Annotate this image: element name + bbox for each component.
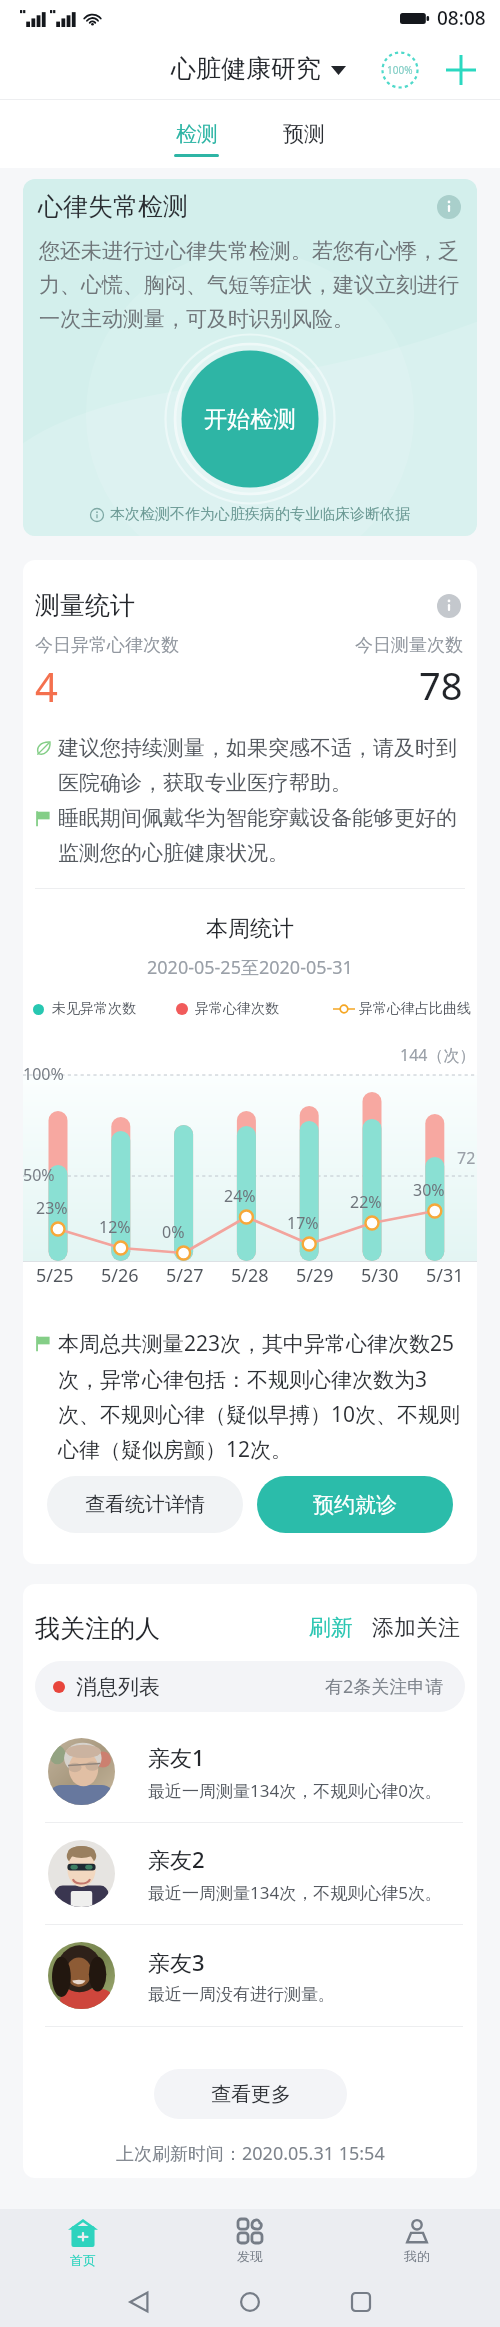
button[interactable]: Recents [339, 2280, 383, 2324]
staticText: 我关注的人 [35, 1613, 160, 1644]
staticText: 消息列表 [76, 1674, 160, 1700]
staticText: 5/27 [166, 1263, 204, 1288]
staticText: 本次检测不作为心脏疾病的专业临床诊断依据 [110, 505, 410, 524]
button[interactable]: 添加关注 [367, 1609, 465, 1647]
staticText: 未见异常次数 [52, 1000, 136, 1018]
staticText: 今日异常心律次数 [35, 634, 179, 657]
staticText: 2020-05-25至2020-05-31 [147, 955, 353, 980]
staticText: 最近一周测量134次，不规则心律5次。 [148, 1881, 442, 1904]
staticText: 异常心律次数 [195, 1000, 279, 1018]
staticText: 144（次） [400, 1044, 476, 1066]
staticText: 查看更多 [211, 2082, 291, 2107]
button[interactable]: 亲友3 [23, 1925, 477, 2026]
staticText: 发现 [237, 2248, 263, 2264]
button[interactable]: 我的 [333, 2209, 500, 2268]
staticText: 刷新 [309, 1614, 353, 1642]
button[interactable]: 心脏健康研究 [171, 53, 346, 84]
staticText: 5/26 [101, 1263, 139, 1288]
staticText: 5/25 [36, 1263, 74, 1288]
staticText: 有2条关注申请 [325, 1674, 444, 1699]
staticText: 检测 [176, 121, 218, 147]
button[interactable]: Home [228, 2280, 272, 2324]
staticText: 心脏健康研究 [171, 53, 321, 84]
button[interactable]: 检测 [174, 121, 219, 157]
staticText: 50% [23, 1164, 55, 1186]
staticText: 5/31 [426, 1263, 464, 1288]
staticText: 亲友3 [148, 1947, 205, 1977]
button[interactable]: 预测 [281, 121, 326, 157]
staticText: 72 [457, 1147, 476, 1169]
button[interactable]: 亲友2 [23, 1823, 477, 1924]
staticText: 预测 [283, 121, 325, 147]
staticText: 异常心律占比曲线 [359, 1000, 471, 1018]
staticText: 建议您持续测量，如果突感不适，请及时到医院确诊，获取专业医疗帮助。 [58, 735, 463, 796]
staticText: 100% [23, 1063, 64, 1085]
button[interactable]: 刷新 [304, 1609, 358, 1647]
staticText: 本周统计 [206, 915, 294, 943]
staticText: 上次刷新时间：2020.05.31 15:54 [116, 2141, 385, 2166]
staticText: 4 [35, 659, 58, 713]
staticText: 心律失常检测 [38, 191, 188, 222]
staticText: 亲友1 [148, 1742, 205, 1772]
staticText: 5/30 [361, 1263, 399, 1288]
staticText: 22% [350, 1191, 382, 1213]
staticText: 开始检测 [204, 405, 296, 434]
button[interactable]: Study progress 100 percent [381, 51, 419, 89]
button[interactable]: 消息列表 [35, 1661, 465, 1712]
staticText: 查看统计详情 [85, 1492, 205, 1517]
staticText: 30% [413, 1179, 445, 1201]
button[interactable]: 预约就诊 [257, 1476, 453, 1533]
button[interactable]: 查看更多 [154, 2069, 347, 2119]
staticText: 您还未进行过心律失常检测。若您有心悸，乏力、心慌、胸闷、气短等症状，建议立刻进行… [39, 238, 460, 333]
button[interactable]: 开始检测 [164, 333, 336, 505]
staticText: 24% [224, 1185, 256, 1207]
button[interactable]: Info [437, 594, 461, 618]
button[interactable]: Add [440, 49, 482, 91]
staticText: 亲友2 [148, 1844, 205, 1874]
staticText: 测量统计 [35, 590, 135, 621]
staticText: 睡眠期间佩戴华为智能穿戴设备能够更好的监测您的心脏健康状况。 [58, 805, 463, 866]
button[interactable]: 查看统计详情 [47, 1476, 243, 1533]
staticText: 最近一周没有进行测量。 [148, 1984, 335, 2005]
staticText: 5/29 [296, 1263, 334, 1288]
staticText: 预约就诊 [313, 1492, 397, 1518]
staticText: 我的 [404, 2248, 430, 2264]
staticText: 添加关注 [372, 1614, 460, 1642]
button[interactable]: 亲友1 [23, 1721, 477, 1822]
staticText: 首页 [70, 2252, 96, 2268]
staticText: 23% [36, 1197, 68, 1219]
staticText: 0% [162, 1221, 185, 1243]
staticText: 78 [419, 659, 463, 711]
staticText: 100% [387, 63, 413, 77]
staticText: 17% [287, 1212, 319, 1234]
staticText: 本周总共测量223次，其中异常心律次数25次，异常心律包括：不规则心律次数为3次… [58, 1329, 463, 1463]
button[interactable]: 首页 [0, 2209, 166, 2272]
button[interactable]: 发现 [166, 2209, 333, 2268]
staticText: 08:08 [437, 5, 486, 31]
staticText: 5/28 [231, 1263, 269, 1288]
button[interactable]: Back [117, 2280, 161, 2324]
staticText: 今日测量次数 [355, 634, 463, 657]
staticText: 12% [99, 1216, 131, 1238]
button[interactable]: Info [437, 195, 461, 219]
staticText: 最近一周测量134次，不规则心律0次。 [148, 1779, 442, 1802]
